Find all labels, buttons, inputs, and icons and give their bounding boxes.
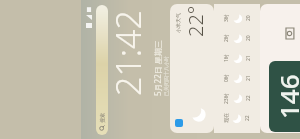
staticText: 21	[245, 55, 252, 61]
button[interactable]: 1时	[223, 53, 252, 64]
staticText: 已关闭四十八小时	[163, 56, 169, 96]
staticText: 146	[271, 74, 300, 119]
staticText: 21	[245, 75, 252, 81]
staticText: 现在	[223, 113, 229, 123]
button[interactable]: 0时	[223, 73, 252, 84]
button[interactable]: 3时	[223, 13, 252, 24]
staticText: 2时	[223, 34, 230, 42]
staticText: 小米天气	[175, 13, 181, 33]
staticText: 5月22日 星期三	[152, 40, 163, 96]
button[interactable]: 小米天气	[170, 4, 214, 133]
button[interactable]: 现在	[223, 113, 251, 124]
staticText: 20	[245, 35, 252, 41]
button[interactable]: 23时	[223, 93, 252, 104]
staticText: 3时	[223, 14, 230, 22]
button[interactable]: 146	[269, 61, 300, 132]
staticText: 22	[245, 95, 252, 101]
button[interactable]: Camera	[282, 27, 296, 41]
button[interactable]: 搜索	[96, 5, 108, 135]
staticText: 20	[245, 15, 252, 21]
staticText: 23时	[223, 93, 230, 104]
staticText: 22	[244, 115, 251, 121]
staticText: 22°	[182, 5, 209, 37]
staticText: 1时	[223, 54, 230, 62]
staticText: 搜索	[99, 113, 105, 123]
staticText: 21:42	[105, 10, 151, 96]
button[interactable]: 2时	[223, 33, 252, 44]
staticText: 0时	[223, 74, 230, 82]
